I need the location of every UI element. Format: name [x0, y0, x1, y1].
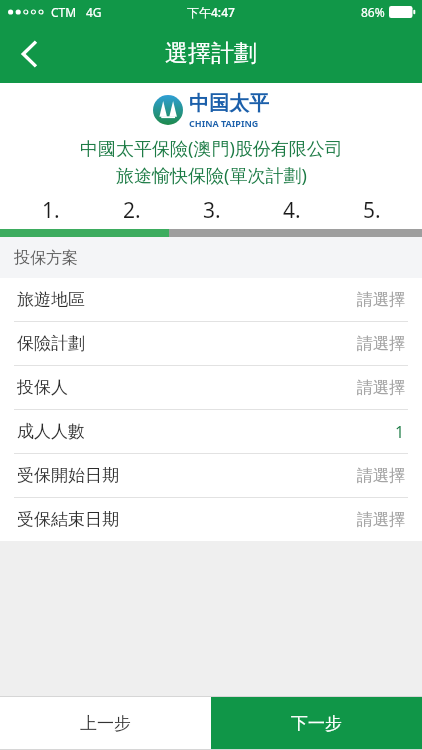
- staticText: 86%: [361, 4, 385, 20]
- staticText: 下午4:47: [187, 4, 235, 20]
- button[interactable]: 受保開始日期: [0, 454, 422, 497]
- staticText: 受保結束日期: [17, 509, 119, 530]
- staticText: 保險計劃: [17, 333, 85, 354]
- staticText: 1.: [42, 196, 60, 225]
- staticText: 請選擇: [357, 334, 405, 354]
- staticText: 1: [395, 421, 405, 443]
- button[interactable]: 受保結束日期: [0, 498, 422, 541]
- staticText: 請選擇: [357, 378, 405, 398]
- staticText: 3.: [203, 196, 221, 225]
- staticText: CHINA TAIPING: [189, 117, 259, 129]
- staticText: 中国太平: [189, 91, 269, 116]
- staticText: 5.: [363, 196, 381, 225]
- button[interactable]: 投保人: [0, 366, 422, 409]
- button[interactable]: 3.: [172, 192, 252, 229]
- button[interactable]: 5.: [332, 192, 412, 229]
- button[interactable]: 4.: [252, 192, 332, 229]
- staticText: 請選擇: [357, 510, 405, 530]
- staticText: 請選擇: [357, 466, 405, 486]
- button[interactable]: 2.: [91, 192, 172, 229]
- staticText: 投保人: [17, 377, 68, 398]
- staticText: 下一步: [291, 713, 342, 734]
- staticText: 旅途愉快保險(單次計劃): [116, 163, 307, 188]
- staticText: 上一步: [80, 713, 131, 734]
- staticText: 投保方案: [14, 248, 78, 268]
- staticText: 成人人數: [17, 421, 85, 442]
- button[interactable]: 保險計劃: [0, 322, 422, 365]
- button[interactable]: 成人人數: [0, 410, 422, 453]
- staticText: 4.: [283, 196, 301, 225]
- staticText: CTM: [51, 4, 77, 20]
- staticText: 2.: [123, 196, 141, 225]
- button[interactable]: Back: [0, 24, 58, 83]
- staticText: 4G: [86, 4, 102, 20]
- button[interactable]: 下一步: [211, 697, 422, 749]
- staticText: 旅遊地區: [17, 289, 85, 310]
- staticText: 請選擇: [357, 290, 405, 310]
- staticText: 受保開始日期: [17, 465, 119, 486]
- button[interactable]: 1.: [10, 192, 91, 229]
- button[interactable]: 上一步: [0, 697, 211, 749]
- staticText: 中國太平保險(澳門)股份有限公司: [80, 136, 343, 161]
- staticText: 選擇計劃: [165, 39, 257, 68]
- button[interactable]: 旅遊地區: [0, 278, 422, 321]
